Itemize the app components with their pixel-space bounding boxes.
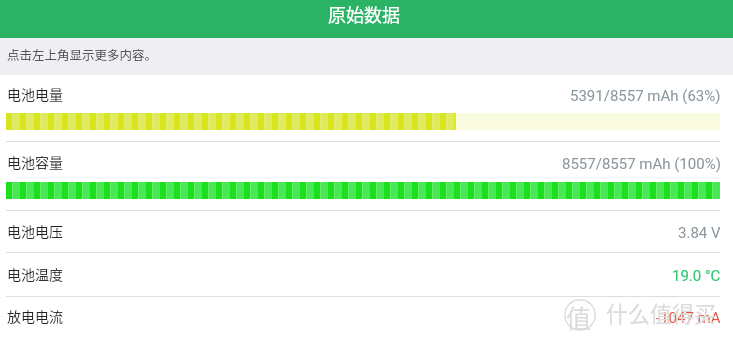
staticText: 电池电量 xyxy=(7,84,63,104)
button[interactable]: 点击左上角显示更多内容。 xyxy=(0,38,733,75)
staticText: -1047 mA xyxy=(656,309,721,327)
button[interactable]: 放电电流 xyxy=(0,297,733,339)
button[interactable]: 电池容量 xyxy=(0,142,733,211)
staticText: 点击左上角显示更多内容。 xyxy=(7,45,158,63)
staticText: 8557/8557 mAh (100%) xyxy=(562,155,721,173)
other: 原始数据 xyxy=(0,0,733,38)
staticText: 电池电压 xyxy=(7,221,63,241)
staticText: 值 xyxy=(566,299,592,331)
button[interactable]: 电池电压 xyxy=(0,211,733,253)
staticText: 放电电流 xyxy=(7,306,63,326)
staticText: 电池温度 xyxy=(7,264,63,284)
button[interactable]: 电池电量 xyxy=(0,75,733,142)
button[interactable]: 电池温度 xyxy=(0,253,733,297)
staticText: 5391/8557 mAh (63%) xyxy=(570,87,721,105)
staticText: 原始数据 xyxy=(328,1,400,27)
staticText: 19.0 °C xyxy=(672,267,721,285)
staticText: 3.84 V xyxy=(678,224,721,242)
staticText: 电池容量 xyxy=(7,152,63,172)
staticText: 什么值得买 xyxy=(606,296,717,328)
